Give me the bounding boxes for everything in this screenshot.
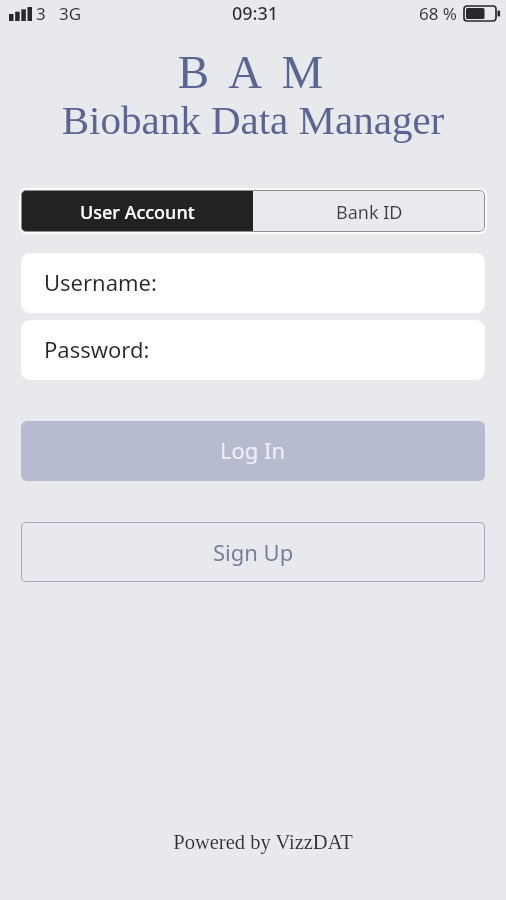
staticText: Log In	[220, 435, 286, 465]
staticText: Bank ID	[336, 200, 403, 225]
staticText: B A M	[0, 46, 506, 98]
staticText: 68 %	[419, 2, 457, 25]
staticText: Powered by VizzDAT	[10, 831, 506, 854]
button[interactable]: Sign Up	[21, 522, 485, 582]
button[interactable]: Bank ID	[253, 190, 485, 232]
button[interactable]: Log In	[21, 421, 485, 481]
staticText: 3	[36, 2, 46, 25]
button[interactable]: User Account	[21, 190, 253, 232]
staticText: Password:	[44, 334, 150, 364]
other: Signal strength	[9, 7, 32, 21]
staticText: User Account	[80, 200, 195, 225]
staticText: Sign Up	[213, 537, 294, 567]
button[interactable]: Username:	[21, 253, 485, 313]
staticText: Biobank Data Manager	[0, 97, 506, 142]
staticText: 3G	[59, 2, 82, 25]
staticText: Username:	[44, 267, 157, 297]
other: Battery 68 percent	[463, 5, 501, 21]
button[interactable]: Password:	[21, 320, 485, 380]
staticText: 09:31	[232, 1, 279, 26]
